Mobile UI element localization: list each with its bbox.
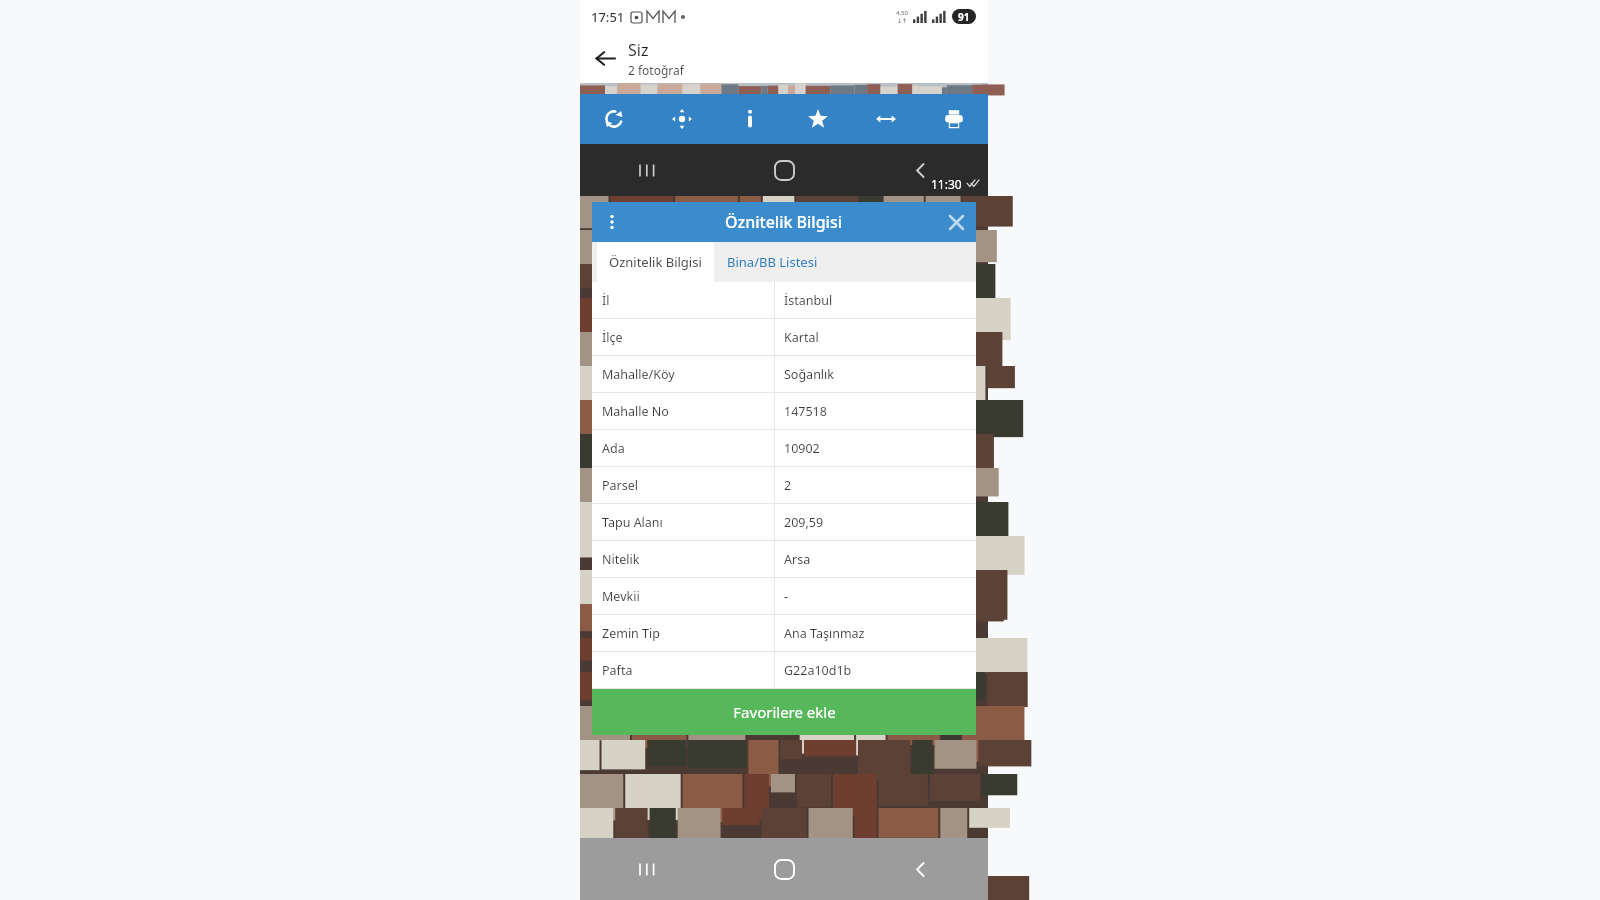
staticText: - (784, 588, 789, 605)
button[interactable]: Close (936, 202, 976, 242)
staticText: Nitelik (602, 551, 640, 568)
button[interactable]: Info (716, 94, 784, 144)
button[interactable]: Home (716, 838, 852, 900)
staticText: Soğanlık (784, 366, 834, 383)
staticText: 147518 (784, 403, 827, 420)
staticText: Parsel (602, 477, 639, 494)
button[interactable]: İlçe (592, 319, 976, 355)
staticText: 4,50 (896, 9, 908, 17)
staticText: Arsa (784, 551, 811, 568)
button[interactable]: Recents (580, 838, 716, 900)
button[interactable]: Pafta (592, 652, 976, 688)
button[interactable]: More options (592, 202, 632, 242)
staticText: Ada (602, 440, 625, 457)
button[interactable]: Tapu Alanı (592, 504, 976, 540)
button[interactable]: Back (852, 144, 988, 196)
staticText: Siz (628, 39, 649, 61)
button[interactable]: Nitelik (592, 541, 976, 577)
staticText: 10902 (784, 440, 820, 457)
staticText: Öznitelik Bilgisi (609, 253, 702, 271)
button[interactable]: Öznitelik Bilgisi (597, 242, 714, 282)
staticText: Kartal (784, 329, 819, 346)
button[interactable]: Print (920, 94, 988, 144)
button[interactable]: Parsel (592, 467, 976, 503)
button[interactable]: Recents (580, 144, 716, 196)
button[interactable]: Favorite (784, 94, 852, 144)
staticText: İl (602, 292, 610, 309)
staticText: Öznitelik Bilgisi (725, 211, 843, 233)
staticText: 2 (784, 477, 792, 494)
staticText: İstanbul (784, 292, 833, 309)
staticText: 91 (958, 10, 970, 24)
staticText: Zemin Tip (602, 625, 660, 642)
button[interactable]: Mahalle No (592, 393, 976, 429)
button[interactable]: Bina/BB Listesi (714, 242, 831, 282)
staticText: Ana Taşınmaz (784, 625, 865, 642)
staticText: Bina/BB Listesi (727, 253, 818, 271)
staticText: 17:51 (591, 8, 625, 26)
staticText: Pafta (602, 662, 633, 679)
button[interactable]: Back (852, 838, 988, 900)
button[interactable]: Mahalle/Köy (592, 356, 976, 392)
button[interactable]: Ada (592, 430, 976, 466)
staticText: Tapu Alanı (602, 514, 663, 531)
staticText: Mahalle No (602, 403, 669, 420)
button[interactable]: Mevkii (592, 578, 976, 614)
staticText: G22a10d1b (784, 662, 852, 679)
staticText: ↓↑ (897, 17, 908, 24)
button[interactable]: Measure (852, 94, 920, 144)
staticText: Mevkii (602, 588, 640, 605)
staticText: Favorilere ekle (733, 702, 836, 722)
button[interactable]: Home (716, 144, 852, 196)
button[interactable]: Locate (648, 94, 716, 144)
staticText: 11:30 (931, 176, 962, 192)
button[interactable]: Zemin Tip (592, 615, 976, 651)
button[interactable]: Refresh (580, 94, 648, 144)
staticText: 2 fotoğraf (628, 62, 684, 78)
staticText: 209,59 (784, 514, 824, 531)
staticText: İlçe (602, 329, 623, 346)
button[interactable]: İl (592, 282, 976, 318)
button[interactable]: Favorilere ekle (592, 689, 976, 735)
button[interactable]: Back (580, 34, 628, 82)
staticText: Mahalle/Köy (602, 366, 675, 383)
